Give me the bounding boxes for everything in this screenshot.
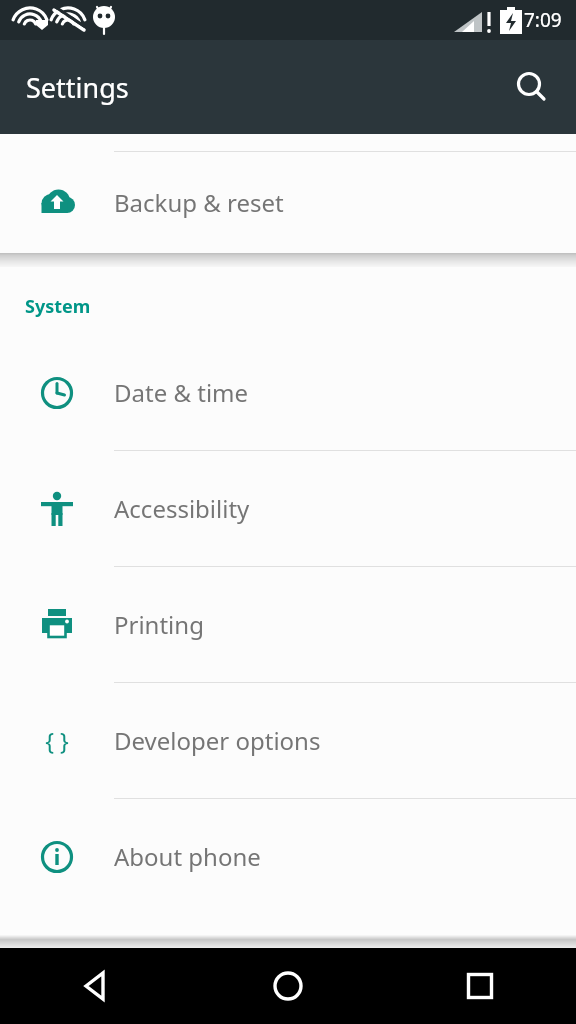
button[interactable]: Back [0,948,192,1024]
button[interactable]: About phone [0,799,576,914]
staticText: System [25,294,91,319]
button[interactable]: Recent apps [384,948,576,1024]
button[interactable]: Printing [0,567,576,682]
staticText: Printing [114,608,204,641]
staticText: Backup & reset [114,186,284,219]
button[interactable]: { } [0,683,576,798]
staticText: { } [45,725,69,756]
button[interactable]: Backup & reset [0,152,576,253]
staticText: Developer options [114,724,321,757]
staticText: Accessibility [114,492,250,525]
button[interactable]: Search [504,59,560,115]
staticText: About phone [114,840,261,873]
button[interactable]: Home [192,948,384,1024]
button[interactable]: Accessibility [0,451,576,566]
staticText: Date & time [114,376,249,409]
staticText: Settings [26,69,129,106]
button[interactable]: Date & time [0,335,576,450]
staticText: 7:09 [524,7,562,33]
